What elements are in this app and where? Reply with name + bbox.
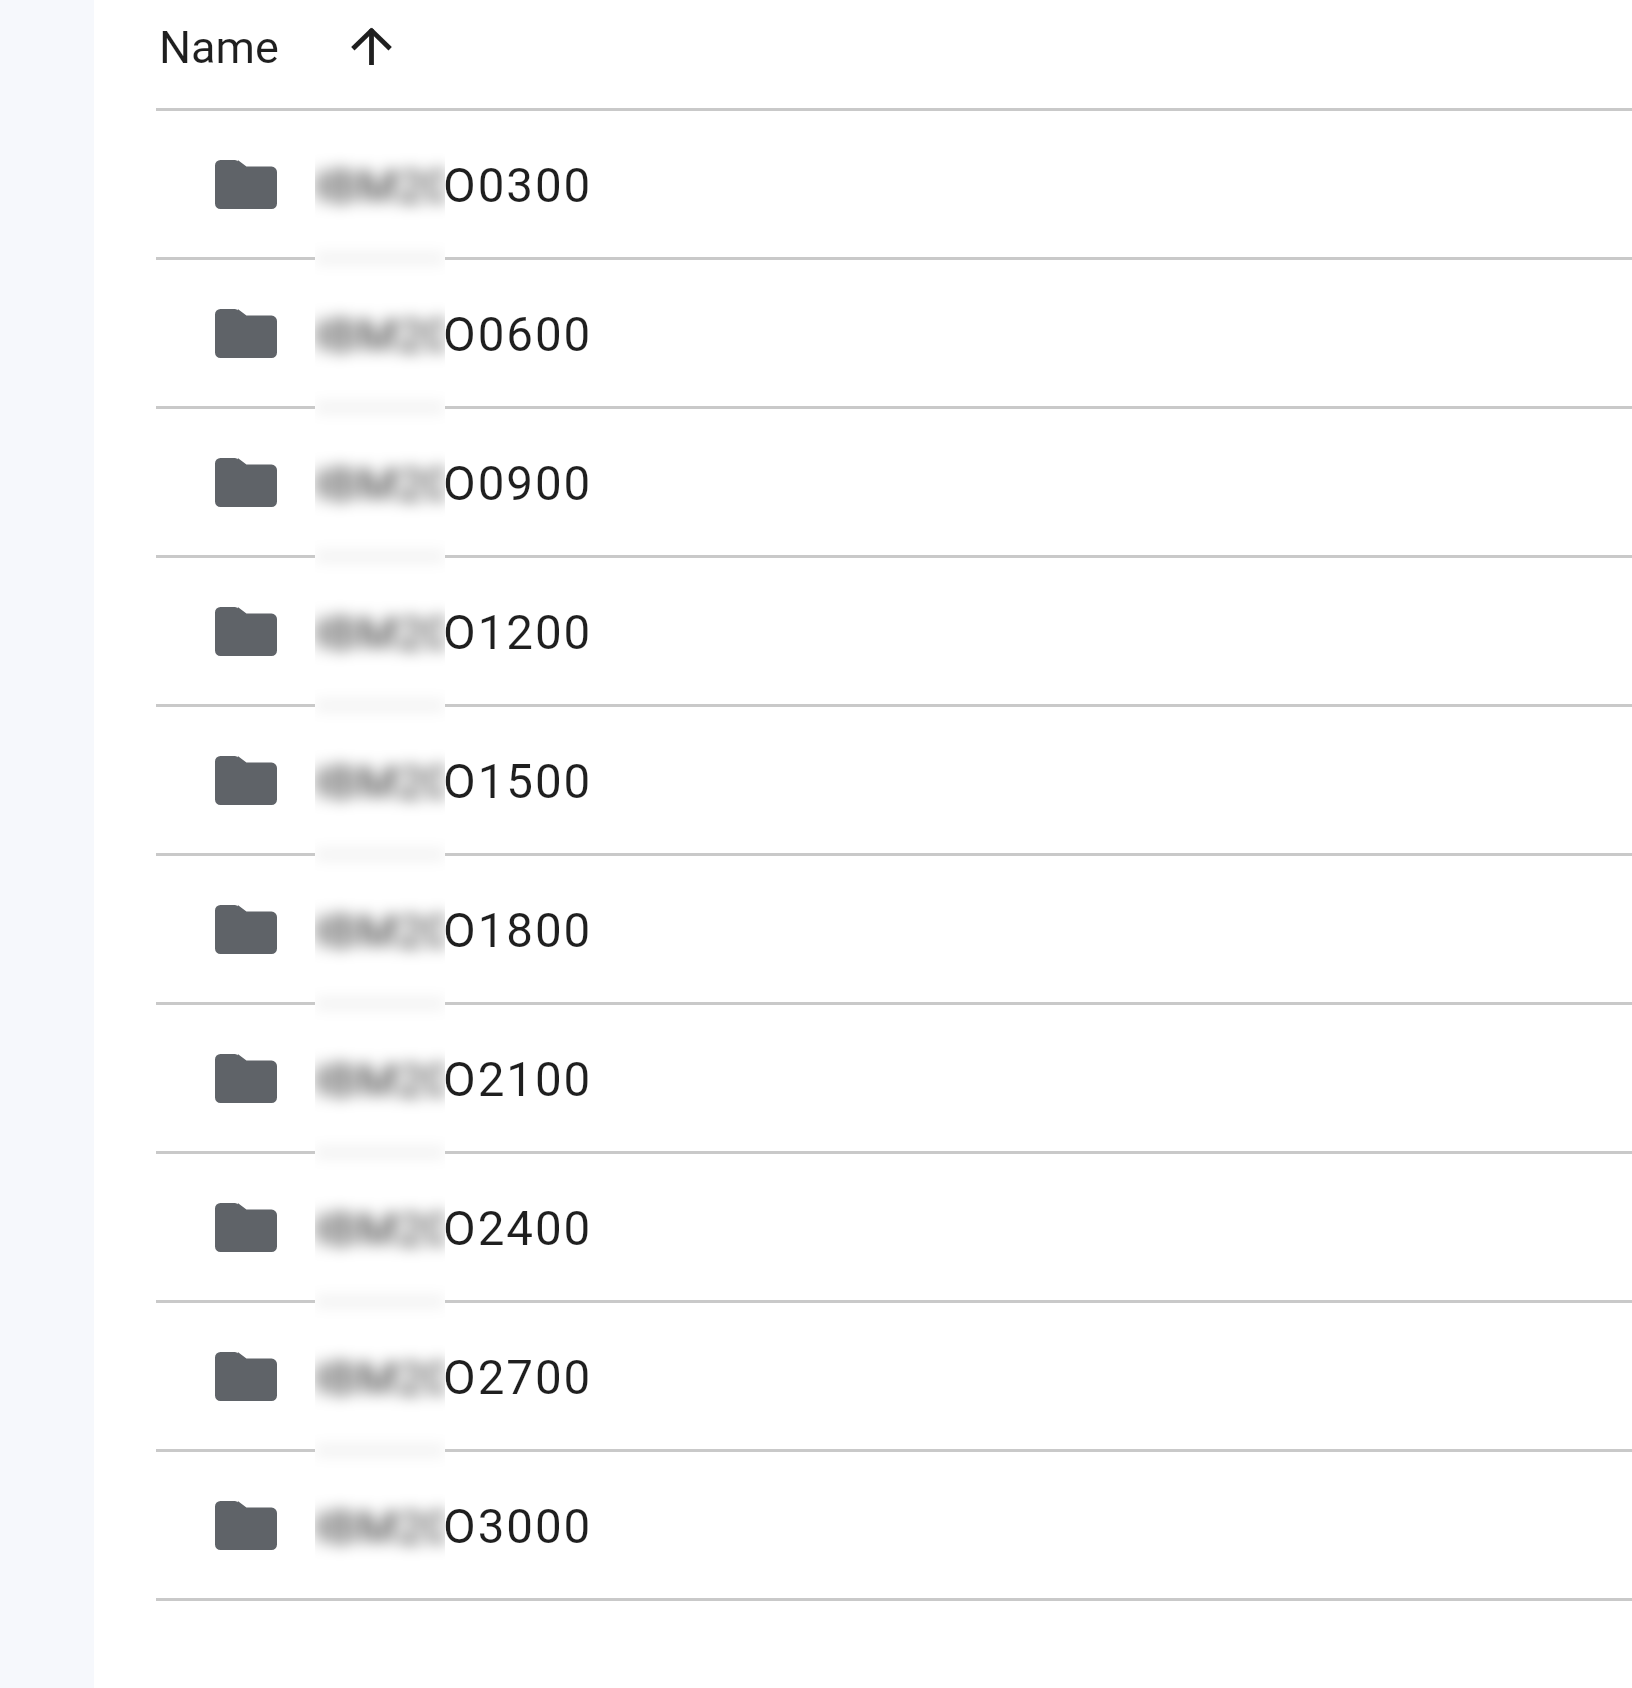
staticText: O0600 bbox=[443, 307, 593, 363]
staticText: O2700 bbox=[443, 1350, 593, 1406]
button[interactable]: Name bbox=[159, 21, 392, 74]
staticText: O1800 bbox=[443, 903, 593, 959]
staticText: HBM20 bbox=[315, 756, 445, 809]
button[interactable]: O2700 bbox=[0, 1303, 1632, 1449]
button[interactable]: O1200 bbox=[0, 558, 1632, 704]
staticText: HBM20 bbox=[315, 905, 445, 958]
button[interactable]: O0600 bbox=[0, 260, 1632, 406]
button[interactable]: O2100 bbox=[0, 1005, 1632, 1151]
staticText: HBM20 bbox=[315, 1501, 445, 1554]
button[interactable]: O0300 bbox=[0, 111, 1632, 257]
staticText: O1500 bbox=[443, 754, 593, 810]
button[interactable]: O1500 bbox=[0, 707, 1632, 853]
staticText: O0900 bbox=[443, 456, 593, 512]
staticText: O0300 bbox=[443, 158, 593, 214]
staticText: HBM20 bbox=[315, 458, 445, 511]
button[interactable]: O2400 bbox=[0, 1154, 1632, 1300]
staticText: O3000 bbox=[443, 1499, 593, 1555]
staticText: HBM20 bbox=[315, 309, 445, 362]
staticText: HBM20 bbox=[315, 607, 445, 660]
button[interactable]: O1800 bbox=[0, 856, 1632, 1002]
staticText: HBM20 bbox=[315, 160, 445, 213]
staticText: HBM20 bbox=[315, 1352, 445, 1405]
staticText: O1200 bbox=[443, 605, 593, 661]
staticText: Name bbox=[159, 21, 279, 74]
staticText: HBM20 bbox=[315, 1203, 445, 1256]
button[interactable]: O0900 bbox=[0, 409, 1632, 555]
other: Sort ascending by name bbox=[351, 27, 392, 65]
staticText: O2400 bbox=[443, 1201, 593, 1257]
staticText: O2100 bbox=[443, 1052, 593, 1108]
staticText: HBM20 bbox=[315, 1054, 445, 1107]
button[interactable]: O3000 bbox=[0, 1452, 1632, 1598]
